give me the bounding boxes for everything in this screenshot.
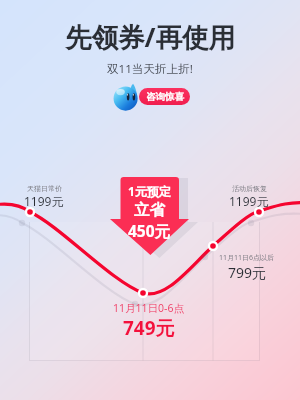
staticText: 咨询惊喜 [146, 91, 184, 103]
staticText: 立省 [134, 200, 165, 220]
staticText: 先领券/再使用 [65, 19, 235, 55]
staticText: 11月11日0-6点 [113, 301, 184, 315]
staticText: 天猫日常价 [27, 184, 62, 193]
staticText: 11月11日6点以后 [219, 253, 275, 263]
button[interactable]: Assistant [113, 83, 141, 109]
staticText: 1199元 [229, 193, 269, 209]
staticText: 799元 [228, 263, 267, 282]
staticText: 活动后恢复 [232, 184, 267, 193]
staticText: 1199元 [24, 193, 64, 209]
staticText: 450元 [128, 220, 171, 241]
staticText: 1元预定 [128, 183, 171, 199]
staticText: 749元 [123, 315, 175, 341]
staticText: 双11当天折上折! [107, 61, 193, 77]
button[interactable]: 咨询惊喜 [139, 88, 190, 105]
